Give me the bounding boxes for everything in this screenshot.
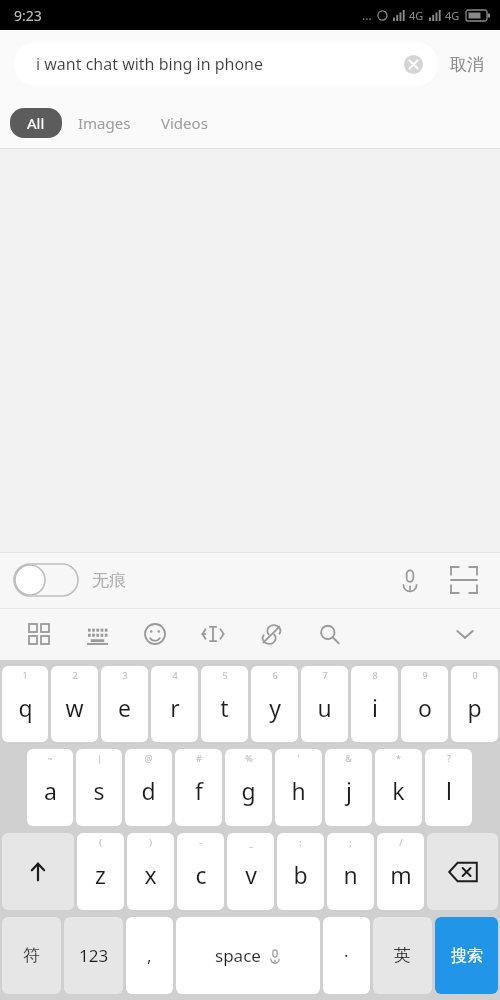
staticText: z [95,859,106,890]
staticText: @ [144,752,153,764]
button[interactable]: ? [425,749,472,826]
button[interactable]: 0 [451,666,498,742]
staticText: s [93,775,105,806]
staticText: 4G [409,8,424,23]
button[interactable]: 英 [373,917,432,994]
staticText: ? [447,752,451,764]
staticText: h [291,775,306,806]
staticText: 4 [172,669,178,681]
staticText: All [27,113,45,133]
button[interactable]: ' [275,749,322,826]
button[interactable]: 6 [251,666,298,742]
staticText: ( [99,836,102,848]
button[interactable]: / [377,833,424,910]
staticText: b [293,859,308,890]
button[interactable]: Apps [22,617,56,651]
button[interactable]: 3 [101,666,148,742]
button[interactable]: 取消 [438,46,486,83]
staticText: d [141,775,156,806]
button[interactable]: : [277,833,324,910]
button[interactable]: · [323,917,370,994]
staticText: 4G [445,8,460,23]
button[interactable]: _ [227,833,274,910]
staticText: 7 [322,669,328,681]
staticText: c [195,859,207,890]
button[interactable]: 4 [151,666,198,742]
staticText: 1 [22,669,28,681]
button[interactable]: @ [125,749,172,826]
button[interactable]: Videos [147,107,222,139]
button[interactable]: ( [77,833,124,910]
staticText: ~ [47,752,53,764]
staticText: u [317,692,332,723]
staticText: q [18,692,33,723]
button[interactable]: Scan [442,558,486,602]
staticText: p [467,692,482,723]
button[interactable]: - [177,833,224,910]
button[interactable]: 5 [201,666,248,742]
staticText: 2 [72,669,78,681]
button[interactable]: ~ [27,749,73,826]
button[interactable]: Keyboard [80,617,114,651]
staticText: 无痕 [92,570,126,591]
staticText: ... [362,7,372,23]
button[interactable]: 9 [401,666,448,742]
button[interactable]: space [176,917,320,994]
button[interactable]: ) [127,833,174,910]
staticText: f [195,775,203,806]
button[interactable]: & [325,749,372,826]
staticText: Videos [161,113,208,133]
button[interactable]: Backspace [427,833,498,910]
staticText: w [65,692,84,723]
button[interactable]: # [175,749,222,826]
button[interactable]: Clipboard [254,617,288,651]
button[interactable]: 7 [301,666,348,742]
button[interactable]: Voice search [388,558,432,602]
button[interactable]: Emoji [138,617,172,651]
staticText: ) [149,836,152,848]
button[interactable]: % [225,749,272,826]
button[interactable]: 123 [64,917,123,994]
staticText: ; [349,836,352,848]
button[interactable]: 搜索 [435,917,498,994]
staticText: i want chat with bing in phone [36,53,400,75]
button[interactable]: | [76,749,122,826]
button[interactable]: ; [327,833,374,910]
staticText: 0 [472,669,478,681]
staticText: 搜索 [451,946,483,966]
button[interactable]: 8 [351,666,398,742]
button[interactable]: Hide keyboard [448,617,482,651]
button[interactable]: Clear [400,51,426,77]
button[interactable]: Shift [2,833,74,910]
staticText: m [390,859,412,890]
button[interactable]: * [375,749,422,826]
button[interactable]: 符 [2,917,61,994]
button[interactable]: Images [62,107,147,139]
button[interactable]: Incognito toggle [14,564,78,596]
staticText: * [396,752,401,764]
staticText: k [392,775,405,806]
button[interactable]: 2 [51,666,98,742]
staticText: 英 [394,945,411,966]
staticText: o [418,692,432,723]
staticText: · [344,944,349,967]
button[interactable]: Cursor [196,617,230,651]
staticText: & [345,752,352,764]
staticText: - [199,836,202,848]
button[interactable]: , [126,917,173,994]
staticText: ' [297,752,300,764]
staticText: / [399,836,403,848]
staticText: 6 [272,669,278,681]
staticText: 5 [222,669,228,681]
staticText: l [446,775,452,806]
staticText: t [220,692,229,723]
staticText: # [196,752,202,764]
staticText: 8 [372,669,378,681]
button[interactable]: Search [312,617,346,651]
staticText: 取消 [450,54,484,75]
button[interactable]: All [10,108,62,138]
button[interactable]: 1 [2,666,48,742]
staticText: v [245,859,257,890]
button[interactable]: i want chat with bing in phone [14,42,438,86]
staticText: _ [249,836,253,848]
